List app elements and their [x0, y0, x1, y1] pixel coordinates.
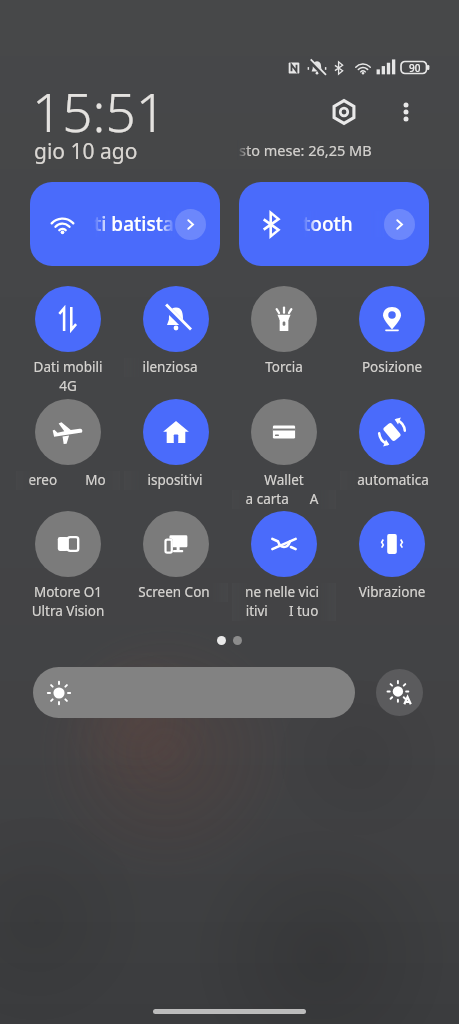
button[interactable]: ispositivi	[124, 399, 228, 490]
staticText: ti batista	[94, 211, 174, 237]
staticText: Vibrazione	[340, 583, 444, 601]
staticText: ispositivi	[123, 471, 227, 489]
button[interactable]: tooth	[239, 182, 429, 266]
button[interactable]: automatica	[340, 399, 444, 490]
staticText: ereo Mo	[15, 471, 119, 489]
button[interactable]: More options	[386, 92, 426, 132]
staticText: ilenziosa	[118, 358, 222, 376]
staticText: Wallet	[232, 471, 336, 489]
staticText: ne nelle vici	[230, 583, 334, 601]
staticText: automatica	[341, 471, 445, 489]
staticText: Dati mobili	[16, 358, 120, 376]
button[interactable]: Auto brightness	[376, 669, 423, 716]
button[interactable]: Brightness	[33, 667, 355, 718]
button[interactable]: ereo Mo	[16, 399, 120, 490]
button[interactable]: Torcia	[232, 286, 336, 377]
staticText: Motore O1	[16, 583, 120, 601]
staticText: itivi I tuo	[230, 602, 334, 620]
staticText: 4G	[16, 377, 120, 395]
button[interactable]: Vibrazione	[340, 511, 444, 602]
button[interactable]: ti batista	[30, 182, 220, 266]
staticText: a carta A	[230, 490, 334, 508]
staticText: 15:51	[32, 75, 166, 147]
staticText: tooth	[303, 211, 353, 237]
staticText: 90	[409, 61, 421, 75]
button[interactable]: Settings	[324, 92, 364, 132]
button[interactable]: Wallet	[232, 399, 336, 509]
staticText: Screen Con	[122, 583, 226, 601]
staticText: Torcia	[232, 358, 336, 376]
button[interactable]: ne nelle vici	[232, 511, 336, 621]
staticText: gio 10 ago	[34, 137, 138, 166]
staticText: Ultra Vision	[16, 602, 120, 620]
button[interactable]: Screen Con	[124, 511, 228, 602]
button[interactable]: Dati mobili	[16, 286, 120, 396]
button[interactable]: Posizione	[340, 286, 444, 377]
staticText: sto mese: 26,25 MB	[239, 140, 372, 160]
button[interactable]: ilenziosa	[124, 286, 228, 377]
staticText: Posizione	[340, 358, 444, 376]
button[interactable]: Motore O1	[16, 511, 120, 621]
